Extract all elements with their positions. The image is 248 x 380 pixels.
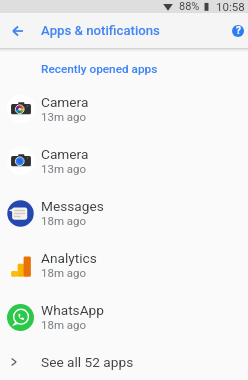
staticText: 88% [179, 0, 200, 13]
staticText: 18m ago [41, 318, 87, 331]
staticText: Analytics [41, 250, 97, 266]
staticText: Messages [41, 198, 104, 214]
button[interactable]: Messages [0, 187, 248, 239]
staticText: 18m ago [41, 214, 87, 227]
button[interactable]: Camera [0, 135, 248, 187]
staticText: Camera [41, 94, 89, 110]
staticText: 13m ago [41, 162, 87, 175]
staticText: 18m ago [41, 266, 87, 279]
button[interactable]: Help [228, 13, 248, 48]
staticText: See all 52 apps [41, 354, 134, 370]
staticText: ? [236, 25, 241, 37]
staticText: Recently opened apps [41, 62, 158, 76]
staticText: Camera [41, 146, 89, 162]
button[interactable]: Camera [0, 83, 248, 135]
button[interactable]: Back [0, 13, 35, 48]
staticText: 13m ago [41, 110, 87, 123]
staticText: Apps & notifications [41, 23, 160, 38]
button[interactable]: WhatsApp [0, 291, 248, 343]
button[interactable]: See all 52 apps [0, 343, 248, 380]
button[interactable]: Analytics [0, 239, 248, 291]
staticText: WhatsApp [41, 302, 104, 318]
staticText: 10:58 [216, 0, 245, 13]
